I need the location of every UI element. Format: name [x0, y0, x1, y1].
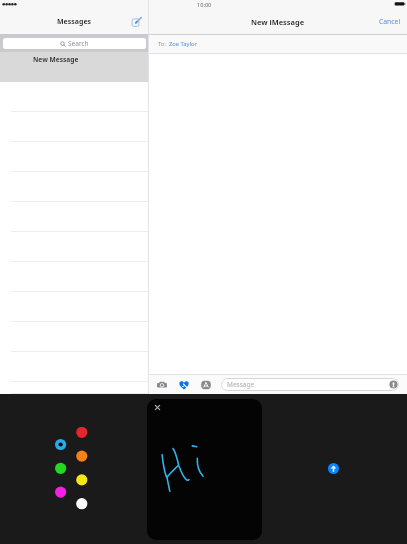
button[interactable] [0, 262, 149, 292]
staticText: Zoe Taylor [169, 40, 197, 48]
button[interactable] [0, 382, 149, 394]
staticText: Messages [57, 17, 92, 27]
button[interactable]: Message [221, 378, 399, 391]
button[interactable] [0, 232, 149, 262]
button[interactable] [0, 352, 149, 382]
button[interactable]: Camera [157, 380, 167, 390]
button[interactable] [0, 142, 149, 172]
staticText: Message [227, 380, 255, 389]
button[interactable]: Digital Touch [179, 380, 189, 390]
button[interactable] [0, 172, 149, 202]
button[interactable] [0, 112, 149, 142]
staticText: Cancel [379, 17, 401, 26]
button[interactable]: App Store [201, 380, 211, 390]
staticText: Search [68, 39, 89, 48]
button[interactable]: To: [149, 35, 407, 53]
staticText: To: [158, 40, 166, 48]
button[interactable] [0, 292, 149, 322]
staticText: New iMessage [251, 17, 305, 27]
button[interactable] [0, 82, 149, 112]
button[interactable] [0, 322, 149, 352]
button[interactable]: Close [147, 399, 262, 540]
staticText: 10:00 [197, 1, 212, 9]
button[interactable]: Close [153, 403, 162, 412]
staticText: New Message [33, 55, 79, 64]
button[interactable]: Send [328, 463, 339, 474]
button[interactable]: New Message [0, 52, 149, 82]
button[interactable]: Search [3, 38, 146, 49]
button[interactable]: Compose new message [131, 16, 142, 27]
button[interactable]: Cancel [379, 17, 401, 26]
button[interactable] [0, 202, 149, 232]
